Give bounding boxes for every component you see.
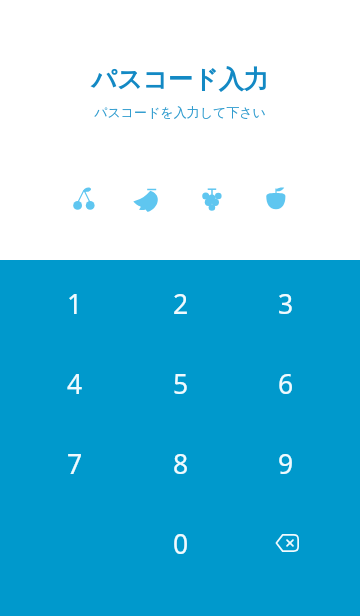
other: Apple: [262, 185, 290, 213]
button[interactable]: 2: [128, 264, 233, 344]
staticText: 4: [67, 366, 83, 402]
button[interactable]: 1: [22, 264, 128, 344]
staticText: 8: [173, 446, 189, 482]
other: Grapes: [198, 185, 226, 213]
staticText: 2: [173, 286, 189, 322]
button[interactable]: 9: [233, 424, 338, 504]
button[interactable]: 8: [128, 424, 233, 504]
button[interactable]: 4: [22, 344, 128, 424]
button[interactable]: 7: [22, 424, 128, 504]
button[interactable]: 5: [128, 344, 233, 424]
staticText: 7: [67, 446, 83, 482]
staticText: 5: [173, 366, 189, 402]
button[interactable]: 6: [233, 344, 338, 424]
staticText: 6: [278, 366, 294, 402]
other: Delete: [275, 534, 299, 552]
other: Banana: [133, 185, 163, 215]
staticText: 1: [67, 286, 83, 322]
staticText: 3: [278, 286, 294, 322]
staticText: 9: [278, 446, 294, 482]
button[interactable]: Delete: [233, 504, 338, 584]
staticText: パスコードを入力して下さい: [0, 104, 360, 120]
button[interactable]: 0: [128, 504, 233, 584]
button[interactable]: 3: [233, 264, 338, 344]
staticText: パスコード入力: [0, 64, 360, 95]
other: Cherries: [70, 185, 98, 213]
staticText: 0: [173, 526, 189, 562]
